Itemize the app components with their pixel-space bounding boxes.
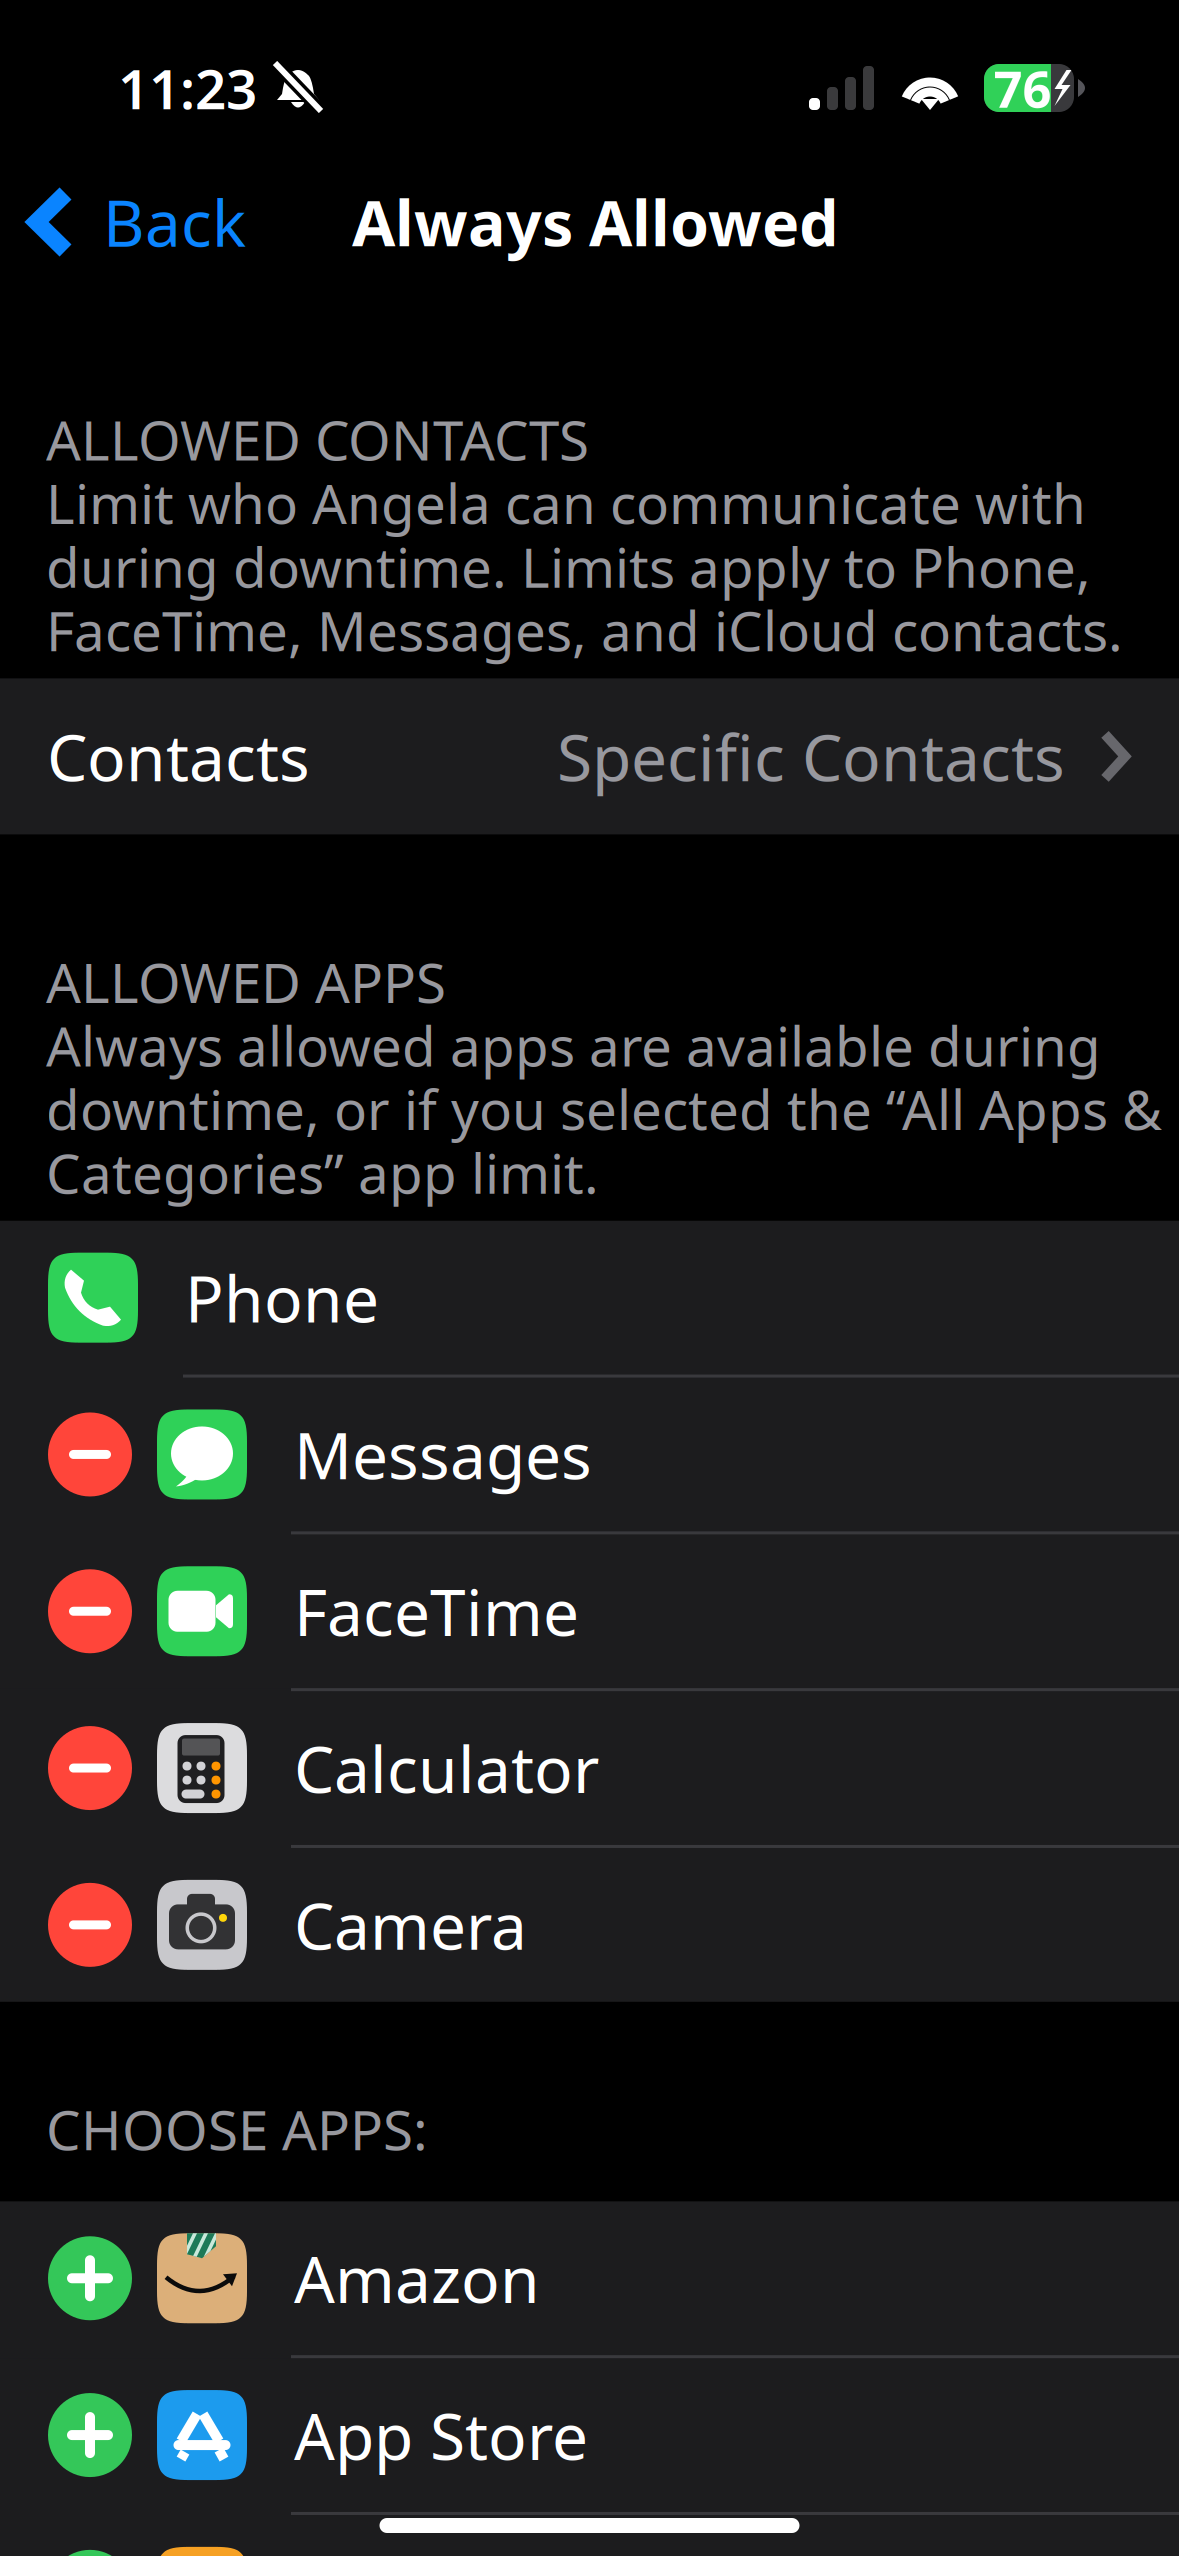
button[interactable]: Phone [0,1221,1179,1375]
staticText: 11:23 [118,52,257,124]
button[interactable]: Messages [0,1378,1179,1531]
button[interactable]: FaceTime [0,1534,1179,1688]
button[interactable]: Camera [0,1848,1179,2002]
staticText: Back [103,179,246,264]
staticText: Calculator [294,1726,599,1811]
button[interactable]: Amazon [0,2201,1179,2355]
staticText: Contacts [47,714,310,799]
staticText: CHOOSE APPS: [46,2093,428,2165]
button[interactable]: Back [0,176,266,268]
staticText: Phone [185,1255,379,1340]
button[interactable]: Calculator [0,1691,1179,1845]
staticText: ALLOWED CONTACTS Limit who Angela can co… [46,403,1123,666]
staticText: Always Allowed [352,180,839,264]
staticText: Amazon [294,2236,540,2321]
button[interactable]: App Store [0,2358,1179,2512]
staticText: Camera [294,1882,527,1967]
staticText: 76 [993,54,1051,122]
button[interactable]: Contacts [0,678,1179,834]
staticText: ALLOWED APPS Always allowed apps are ava… [46,945,1162,1209]
staticText: Specific Contacts [557,714,1065,799]
staticText: App Store [294,2393,588,2478]
staticText: Messages [294,1412,592,1497]
button[interactable]: Books [0,2515,1179,2556]
staticText: FaceTime [294,1569,579,1654]
